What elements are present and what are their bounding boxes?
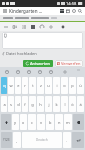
button[interactable]: r <box>22 77 28 94</box>
button[interactable]: Antworten <box>23 60 53 67</box>
staticText: Kindergarten ... <box>9 8 43 14</box>
button[interactable]: h <box>37 96 44 112</box>
button[interactable]: List <box>20 23 27 30</box>
button[interactable]: q <box>1 77 7 94</box>
button[interactable]: p <box>69 77 76 94</box>
button[interactable] <box>2 32 83 49</box>
staticText: g <box>31 102 34 107</box>
button[interactable]: x <box>20 114 27 130</box>
button[interactable]: Emoji 3 <box>23 67 34 76</box>
button[interactable]: , <box>13 132 21 148</box>
staticText: y <box>14 120 17 125</box>
button[interactable]: Search <box>77 8 83 14</box>
staticText: 14:58 <box>66 1 77 6</box>
staticText: t <box>32 83 34 88</box>
button[interactable]: Notifications <box>71 8 77 14</box>
staticText: u <box>47 83 50 88</box>
button[interactable]: c <box>28 114 36 130</box>
button[interactable]: d <box>15 96 21 112</box>
staticText: s <box>10 102 12 107</box>
button[interactable]: Delete <box>65 8 71 14</box>
button[interactable]: n <box>55 114 63 130</box>
button[interactable]: Verwerfen <box>55 60 83 67</box>
staticText: ü <box>79 83 82 88</box>
staticText: ?123 <box>3 138 10 142</box>
staticText: j <box>48 102 50 107</box>
button[interactable]: s <box>8 96 14 112</box>
button[interactable]: e <box>15 77 21 94</box>
staticText: p <box>71 83 74 88</box>
button[interactable]: v <box>37 114 45 130</box>
staticText: o <box>63 83 66 88</box>
staticText: k <box>55 102 58 107</box>
button[interactable]: ö <box>69 96 76 112</box>
staticText: h <box>39 102 42 107</box>
staticText: a <box>3 102 6 107</box>
button[interactable]: Emoji 4 <box>34 67 45 76</box>
button[interactable]: Redo <box>38 23 45 30</box>
staticText: . <box>66 138 68 143</box>
staticText: n <box>58 120 61 125</box>
staticText: Verwerfen <box>61 61 81 66</box>
staticText: b <box>49 120 52 125</box>
button[interactable]: w <box>8 77 14 94</box>
staticText: d <box>17 102 20 107</box>
button[interactable]: Enter <box>72 132 84 148</box>
button[interactable]: l <box>61 96 68 112</box>
button[interactable]: u <box>45 77 52 94</box>
staticText: Antworten <box>30 61 50 66</box>
staticText: l <box>64 102 66 107</box>
button[interactable]: More <box>59 23 66 30</box>
staticText: m <box>66 120 70 125</box>
button[interactable]: a <box>1 96 7 112</box>
staticText: r <box>24 83 26 88</box>
button[interactable]: Undo <box>2 23 9 30</box>
button[interactable]: y <box>12 114 19 130</box>
button[interactable]: z <box>37 77 44 94</box>
staticText: e <box>17 83 20 88</box>
staticText: z <box>40 83 42 88</box>
staticText: w <box>9 83 13 88</box>
button[interactable]: Emoji 1 <box>1 67 12 76</box>
staticText: ö <box>71 102 74 107</box>
button[interactable]: Shift <box>1 114 11 130</box>
button[interactable]: Emoji 2 <box>12 67 23 76</box>
button[interactable]: Space <box>22 132 62 148</box>
button[interactable]: t <box>29 77 36 94</box>
button[interactable]: More <box>73 67 84 76</box>
button[interactable]: Text style <box>11 23 18 30</box>
button[interactable]: o <box>61 77 68 94</box>
staticText: i <box>56 83 58 88</box>
button[interactable]: j <box>45 96 52 112</box>
button[interactable]: f <box>22 96 28 112</box>
staticText: , <box>16 138 18 143</box>
button[interactable]: g <box>29 96 36 112</box>
button[interactable]: Settings <box>56 67 73 76</box>
staticText: v <box>40 120 43 125</box>
button[interactable]: Link <box>47 23 54 30</box>
staticText: x <box>22 120 25 125</box>
staticText: f <box>24 102 26 107</box>
button[interactable]: ?123 <box>1 132 12 148</box>
staticText: ä <box>79 102 82 107</box>
button[interactable]: m <box>64 114 72 130</box>
staticText: c <box>31 120 33 125</box>
button[interactable]: Datei hochladen <box>2 50 37 57</box>
button[interactable]: Menu <box>2 8 8 14</box>
button[interactable]: ü <box>77 77 84 94</box>
button[interactable]: b <box>46 114 54 130</box>
button[interactable]: Align <box>29 23 36 30</box>
button[interactable]: Emoji 5 <box>45 67 56 76</box>
button[interactable]: k <box>53 96 60 112</box>
button[interactable]: Backspace <box>73 114 84 130</box>
staticText: Datei hochladen <box>6 51 37 56</box>
button[interactable]: i <box>53 77 60 94</box>
staticText: Deutsch <box>36 138 48 142</box>
button[interactable]: ä <box>77 96 84 112</box>
button[interactable]: Archive <box>59 8 65 14</box>
staticText: q <box>3 83 6 88</box>
